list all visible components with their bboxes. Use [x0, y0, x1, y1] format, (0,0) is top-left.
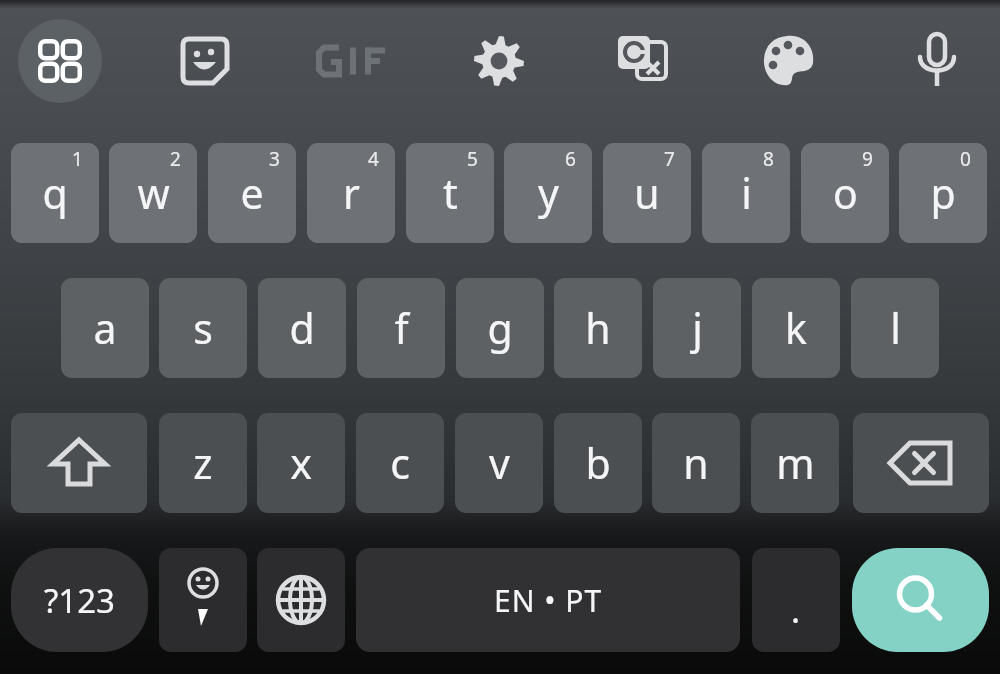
staticText: t — [443, 165, 458, 221]
staticText: n — [683, 435, 709, 491]
button[interactable]: v — [455, 413, 543, 513]
button[interactable]: j — [653, 278, 741, 378]
button[interactable]: t — [406, 143, 494, 243]
button[interactable]: n — [652, 413, 740, 513]
button[interactable]: r — [307, 143, 395, 243]
staticText: d — [289, 300, 315, 356]
staticText: a — [93, 300, 117, 356]
staticText: g — [487, 300, 513, 356]
button[interactable]: Comma and emoji — [159, 548, 247, 652]
staticText: j — [692, 300, 703, 356]
button[interactable]: f — [357, 278, 445, 378]
staticText: 0 — [960, 146, 971, 172]
button[interactable]: z — [159, 413, 247, 513]
staticText: l — [890, 300, 901, 356]
staticText: o — [833, 165, 858, 221]
button[interactable]: d — [258, 278, 346, 378]
button[interactable]: p — [899, 143, 987, 243]
button[interactable]: q — [11, 143, 99, 243]
staticText: u — [634, 165, 660, 221]
button[interactable]: x — [257, 413, 345, 513]
button[interactable]: g — [456, 278, 544, 378]
button[interactable]: i — [702, 143, 790, 243]
staticText: k — [785, 300, 807, 356]
staticText: x — [290, 435, 312, 491]
button[interactable]: u — [603, 143, 691, 243]
button[interactable]: w — [109, 143, 197, 243]
staticText: p — [930, 165, 956, 221]
staticText: i — [741, 165, 752, 221]
staticText: 2 — [170, 146, 181, 172]
staticText: b — [585, 435, 611, 491]
button[interactable]: o — [801, 143, 889, 243]
button[interactable]: Settings — [457, 19, 541, 103]
button[interactable]: a — [61, 278, 149, 378]
staticText: h — [585, 300, 611, 356]
button[interactable]: b — [554, 413, 642, 513]
staticText: s — [193, 300, 213, 356]
button[interactable]: ?123 — [11, 548, 148, 652]
staticText: q — [42, 165, 68, 221]
staticText: 3 — [269, 146, 280, 172]
staticText: EN • PT — [494, 580, 603, 621]
staticText: r — [343, 165, 360, 221]
staticText: v — [489, 435, 510, 491]
button[interactable]: Translate — [600, 19, 684, 103]
button[interactable]: c — [356, 413, 444, 513]
button[interactable]: Theme — [747, 19, 831, 103]
staticText: m — [776, 435, 815, 491]
staticText: 6 — [565, 146, 576, 172]
staticText: ?123 — [44, 578, 115, 623]
staticText: w — [137, 165, 170, 221]
staticText: z — [193, 435, 213, 491]
button[interactable]: s — [159, 278, 247, 378]
staticText: c — [390, 435, 410, 491]
button[interactable]: Backspace — [853, 413, 989, 513]
button[interactable]: Voice input — [895, 19, 979, 103]
button[interactable]: . — [752, 548, 840, 652]
button[interactable]: l — [851, 278, 939, 378]
staticText: 7 — [664, 146, 675, 172]
button[interactable]: e — [208, 143, 296, 243]
staticText: e — [240, 165, 264, 221]
button[interactable]: Shift — [11, 413, 147, 513]
button[interactable]: EN • PT — [356, 548, 740, 652]
button[interactable]: Stickers — [163, 19, 247, 103]
staticText: 4 — [368, 146, 379, 172]
staticText: 9 — [862, 146, 873, 172]
button[interactable]: Apps — [18, 19, 102, 103]
button[interactable]: h — [554, 278, 642, 378]
staticText: 1 — [72, 146, 83, 172]
button[interactable]: Change language — [257, 548, 345, 652]
staticText: f — [394, 300, 409, 356]
staticText: . — [791, 587, 801, 633]
button[interactable]: k — [752, 278, 840, 378]
button[interactable]: GIF — [310, 19, 394, 103]
button[interactable]: m — [751, 413, 839, 513]
button[interactable]: Search — [852, 548, 989, 652]
staticText: 8 — [763, 146, 774, 172]
staticText: y — [538, 165, 559, 221]
button[interactable]: y — [504, 143, 592, 243]
staticText: 5 — [467, 146, 478, 172]
